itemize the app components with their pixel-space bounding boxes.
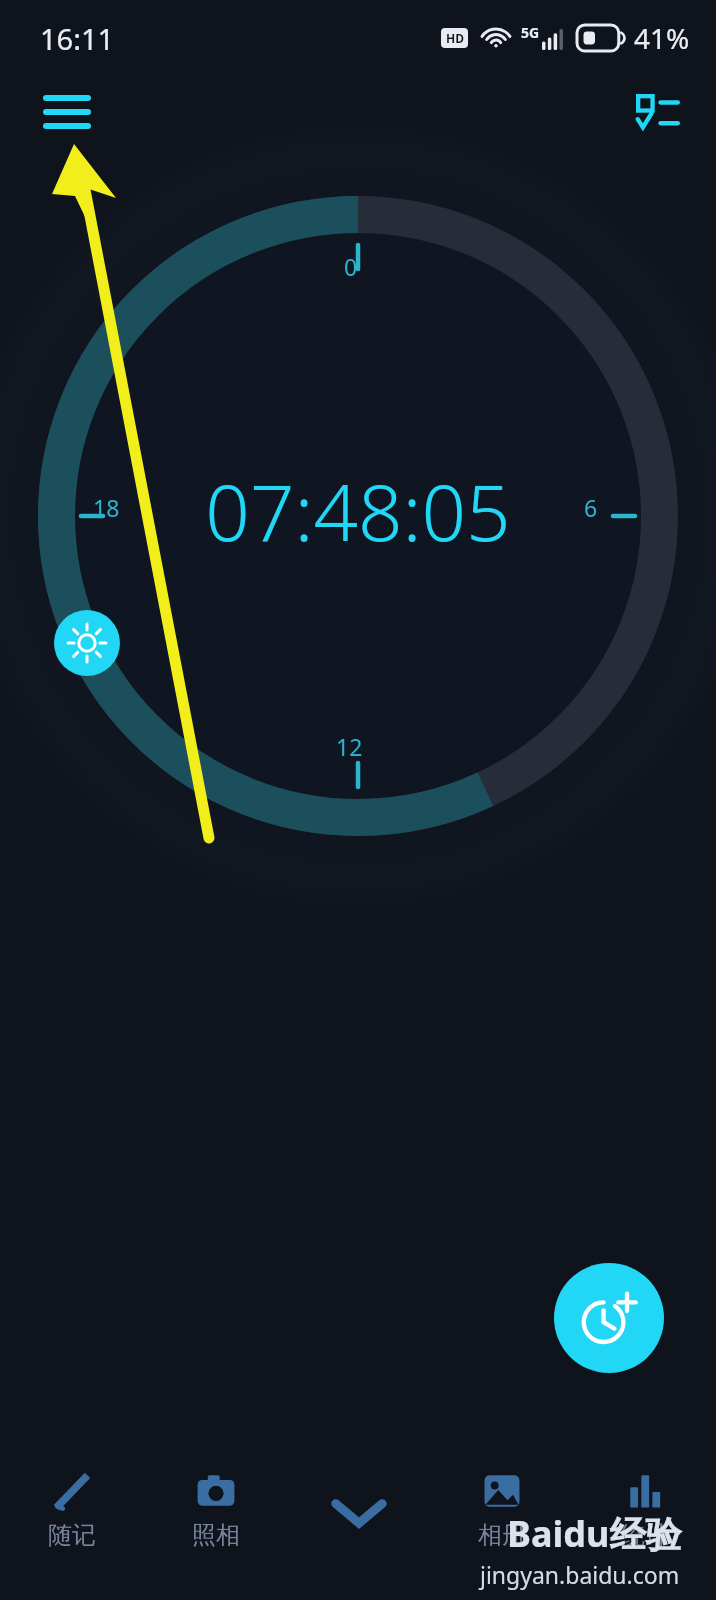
- staticText: Baidu经验: [507, 1509, 682, 1558]
- staticText: HD: [446, 30, 464, 46]
- staticText: 41%: [634, 19, 690, 57]
- button[interactable]: Camera: [144, 1440, 287, 1578]
- staticText: jingyan.baidu.com: [480, 1559, 680, 1590]
- staticText: 07:48:05: [0, 458, 716, 564]
- button[interactable]: Add timer: [554, 1263, 664, 1373]
- button[interactable]: Daylight saving: [54, 610, 120, 676]
- staticText: 照相: [192, 1520, 240, 1550]
- button[interactable]: Album: [430, 1440, 573, 1578]
- button[interactable]: Stats: [573, 1440, 716, 1578]
- button[interactable]: Notes: [0, 1440, 144, 1578]
- staticText: 随记: [48, 1520, 96, 1550]
- staticText: 16:11: [40, 19, 115, 58]
- button[interactable]: Menu: [36, 84, 98, 140]
- staticText: 6: [584, 492, 598, 523]
- button[interactable]: Collapse: [287, 1440, 430, 1578]
- staticText: 0: [344, 251, 358, 282]
- staticText: 5G: [521, 23, 540, 42]
- staticText: 统计: [621, 1520, 669, 1550]
- staticText: 相册: [478, 1520, 526, 1550]
- staticText: 12: [336, 731, 363, 762]
- staticText: 18: [93, 492, 120, 523]
- button[interactable]: Task list: [626, 84, 690, 140]
